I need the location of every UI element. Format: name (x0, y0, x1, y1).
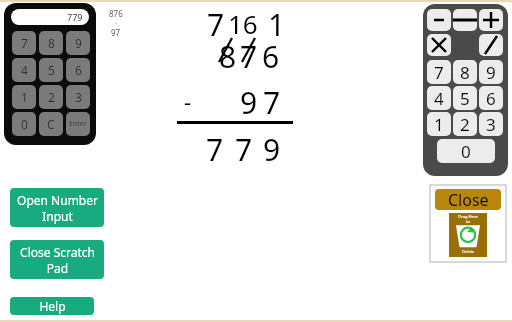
button[interactable]: 5 (39, 58, 63, 82)
staticText: 3 (75, 89, 82, 105)
staticText: 8 (48, 35, 55, 51)
staticText: 4 (434, 87, 444, 110)
staticText: 1 (21, 89, 28, 105)
staticText: 7 (206, 129, 224, 170)
staticText: 876 (109, 8, 123, 19)
other: Multiply (428, 35, 450, 55)
staticText: 7 (263, 82, 281, 123)
staticText: 7 (434, 61, 444, 84)
button[interactable]: Fraction bar (453, 9, 477, 31)
button[interactable]: 8 (453, 60, 477, 84)
button[interactable]: 0 (12, 112, 36, 136)
staticText: 5 (460, 87, 470, 110)
button[interactable]: 6 (479, 86, 503, 110)
staticText: Close (448, 189, 489, 210)
staticText: 9 (486, 61, 496, 84)
staticText: - (115, 19, 117, 27)
staticText: 6 (75, 62, 82, 78)
button[interactable]: Multiply (427, 34, 451, 56)
button[interactable]: 1 (427, 112, 451, 136)
staticText: 6 (486, 87, 496, 110)
staticText: C (47, 116, 55, 132)
other: Divide (480, 35, 502, 55)
staticText: Close Scratch Pad (20, 244, 95, 276)
other: Fraction bar (454, 10, 476, 30)
staticText: 6 (262, 36, 280, 77)
staticText: Enter (69, 119, 87, 129)
button[interactable]: 9 (479, 60, 503, 84)
staticText: 97 (111, 27, 121, 38)
staticText: 9 (240, 82, 258, 123)
button[interactable]: 2 (453, 112, 477, 136)
button[interactable]: 2 (39, 85, 63, 109)
staticText: 3 (486, 113, 496, 136)
button[interactable]: 3 (479, 112, 503, 136)
staticText: 5 (48, 62, 55, 78)
staticText: Open Number Input (17, 192, 98, 224)
button[interactable]: Enter (66, 112, 90, 136)
button[interactable]: Drag here to delete (449, 213, 487, 257)
staticText: 9 (75, 35, 82, 51)
other: Negative sign (428, 10, 450, 30)
staticText: 779 (67, 11, 83, 23)
staticText: 1 (268, 4, 286, 45)
other: Plus (480, 10, 502, 30)
button[interactable]: 8 (39, 31, 63, 55)
button[interactable]: 5 (453, 86, 477, 110)
staticText: 9 (263, 129, 281, 170)
staticText: Drag Here to (449, 214, 487, 224)
staticText: 7 (207, 4, 225, 45)
button[interactable]: Divide (479, 34, 503, 56)
staticText: 0 (21, 116, 28, 132)
staticText: - (184, 86, 192, 116)
button[interactable]: 3 (66, 85, 90, 109)
staticText: 8 (219, 36, 237, 77)
button[interactable]: Open Number Input (10, 188, 104, 227)
button[interactable]: 6 (66, 58, 90, 82)
staticText: 2 (460, 113, 470, 136)
button[interactable]: 4 (427, 86, 451, 110)
button[interactable]: 9 (66, 31, 90, 55)
button[interactable]: Close (435, 189, 501, 210)
button[interactable]: 1 (12, 85, 36, 109)
button[interactable]: 4 (12, 58, 36, 82)
staticText: Delete (449, 249, 487, 254)
button[interactable]: Close Scratch Pad (10, 240, 104, 279)
staticText: 4 (21, 62, 28, 78)
button[interactable]: C (39, 112, 63, 136)
button[interactable]: 7 (427, 60, 451, 84)
staticText: 8 (460, 61, 470, 84)
staticText: 0 (461, 140, 471, 163)
button[interactable]: Negative sign (427, 9, 451, 31)
button[interactable]: Help (10, 297, 94, 315)
staticText: 2 (48, 89, 55, 105)
button[interactable]: 0 (437, 139, 495, 163)
staticText: 7 (240, 36, 258, 77)
staticText: Help (39, 298, 66, 314)
button[interactable]: Plus (479, 9, 503, 31)
staticText: 1 (434, 113, 444, 136)
staticText: 7 (21, 35, 28, 51)
button[interactable]: 7 (12, 31, 36, 55)
staticText: 16 (228, 6, 258, 41)
staticText: 7 (235, 129, 253, 170)
